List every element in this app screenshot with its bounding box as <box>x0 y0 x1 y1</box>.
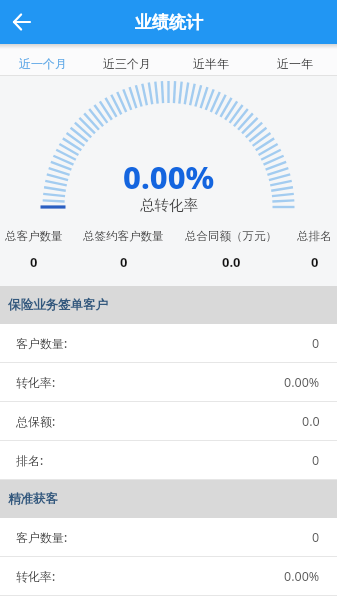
staticText: 0.0 <box>222 253 241 271</box>
staticText: 总合同额（万元） <box>185 229 277 243</box>
staticText: 转化率: <box>16 568 56 584</box>
staticText: 0 <box>312 452 320 469</box>
button[interactable]: 排名: <box>0 441 337 480</box>
staticText: 近半年 <box>193 56 229 71</box>
button[interactable] <box>6 6 38 38</box>
staticText: 0 <box>120 253 128 271</box>
button[interactable]: 客户数量: <box>0 518 337 557</box>
staticText: 近一个月 <box>19 56 67 71</box>
button[interactable]: 近三个月 <box>85 44 169 76</box>
staticText: 0 <box>311 253 319 271</box>
staticText: 0.00% <box>284 568 320 585</box>
staticText: 排名: <box>16 452 44 468</box>
staticText: 保险业务签单客户 <box>8 297 108 313</box>
staticText: 近三个月 <box>103 56 151 71</box>
button[interactable]: 客户数量: <box>0 324 337 363</box>
staticText: 总排名 <box>297 229 332 243</box>
staticText: 总客户数量 <box>5 229 63 243</box>
staticText: 0 <box>312 335 320 352</box>
button[interactable]: 总保额: <box>0 402 337 441</box>
button[interactable]: 近一年 <box>253 44 337 76</box>
staticText: 精准获客 <box>8 491 58 507</box>
staticText: 客户数量: <box>16 529 68 545</box>
staticText: 0.0 <box>302 413 320 430</box>
staticText: 总转化率 <box>140 196 198 214</box>
staticText: 近一年 <box>277 56 313 71</box>
button[interactable]: 近半年 <box>169 44 253 76</box>
staticText: 总保额: <box>16 413 56 429</box>
staticText: 0 <box>312 529 320 546</box>
staticText: 0.00% <box>123 156 215 198</box>
staticText: 转化率: <box>16 374 56 390</box>
staticText: 0.00% <box>284 374 320 391</box>
staticText: 0 <box>30 253 38 271</box>
button[interactable]: 近一个月 <box>0 44 85 76</box>
button[interactable]: 转化率: <box>0 557 337 596</box>
staticText: 客户数量: <box>16 335 68 351</box>
staticText: 业绩统计 <box>135 12 203 33</box>
button[interactable]: 转化率: <box>0 363 337 402</box>
staticText: 总签约客户数量 <box>83 229 164 243</box>
